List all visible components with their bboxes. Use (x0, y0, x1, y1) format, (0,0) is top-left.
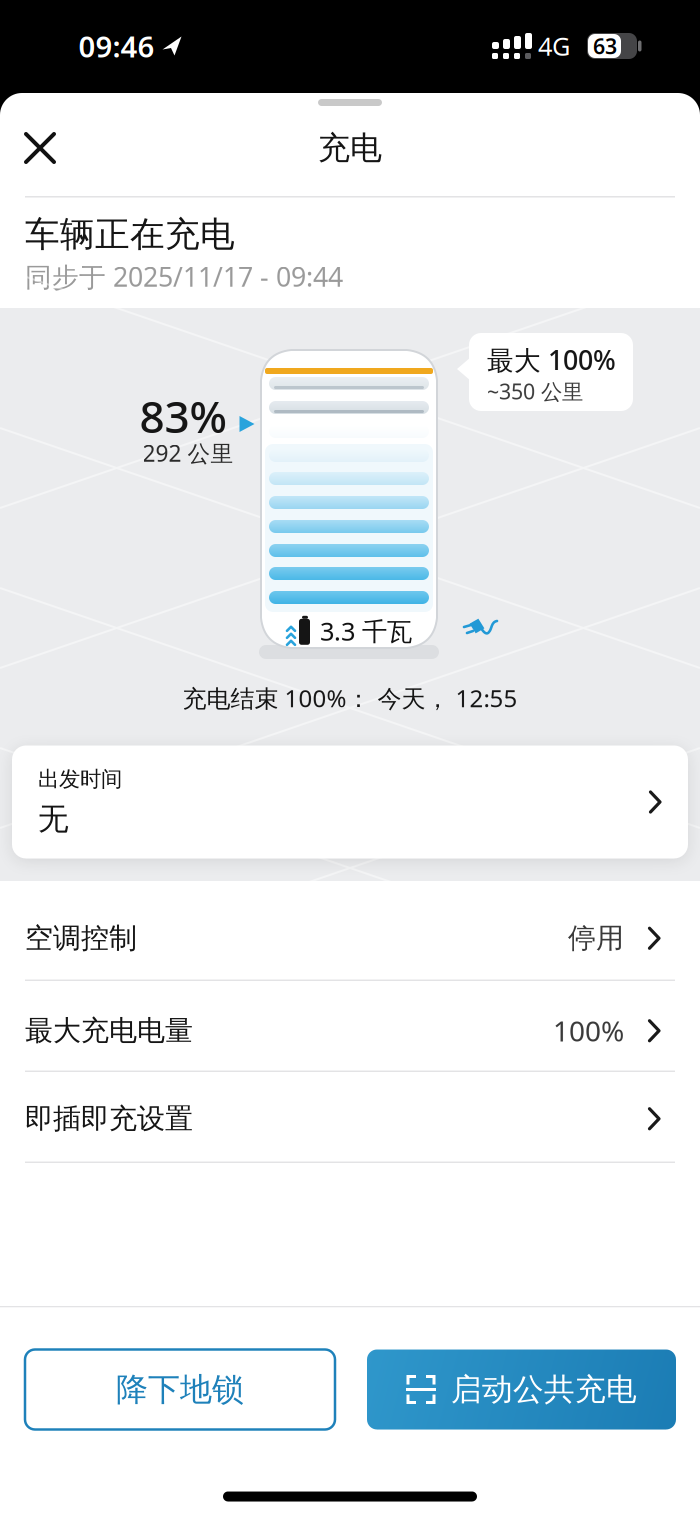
staticText: 车辆正在充电 (25, 213, 235, 256)
staticText: 292 公里 (142, 438, 233, 468)
staticText: 停用 (568, 921, 624, 955)
staticText: 同步于 2025/11/17 - 09:44 (25, 259, 343, 294)
staticText: 63 (593, 32, 617, 60)
staticText: 4G (538, 29, 570, 63)
button[interactable]: 出发时间 (12, 745, 688, 858)
staticText: 充电 (318, 128, 382, 168)
button[interactable]: 降下地锁 (25, 1349, 335, 1429)
staticText: 最大充电电量 (25, 1014, 193, 1048)
staticText: 83% (139, 387, 226, 445)
button[interactable] (25, 133, 55, 163)
staticText: 充电结束 100%： 今天， 12:55 (182, 682, 517, 714)
staticText: 空调控制 (25, 921, 137, 955)
staticText: 100% (553, 1012, 624, 1049)
staticText: 09:46 (78, 26, 154, 65)
staticText: 启动公共充电 (451, 1371, 637, 1408)
staticText: 降下地锁 (116, 1370, 244, 1409)
staticText: 最大 100% (487, 342, 616, 377)
button[interactable]: 启动公共充电 (367, 1349, 676, 1429)
staticText: 3.3 千瓦 (320, 614, 412, 648)
button[interactable]: 最大充电电量 (25, 981, 675, 1070)
staticText: 即插即充设置 (25, 1102, 193, 1136)
button[interactable]: 空调控制 (25, 881, 675, 979)
staticText: 出发时间 (38, 766, 122, 792)
staticText: ~350 公里 (487, 377, 583, 405)
staticText: 无 (38, 800, 69, 838)
button[interactable]: 即插即充设置 (25, 1072, 675, 1161)
